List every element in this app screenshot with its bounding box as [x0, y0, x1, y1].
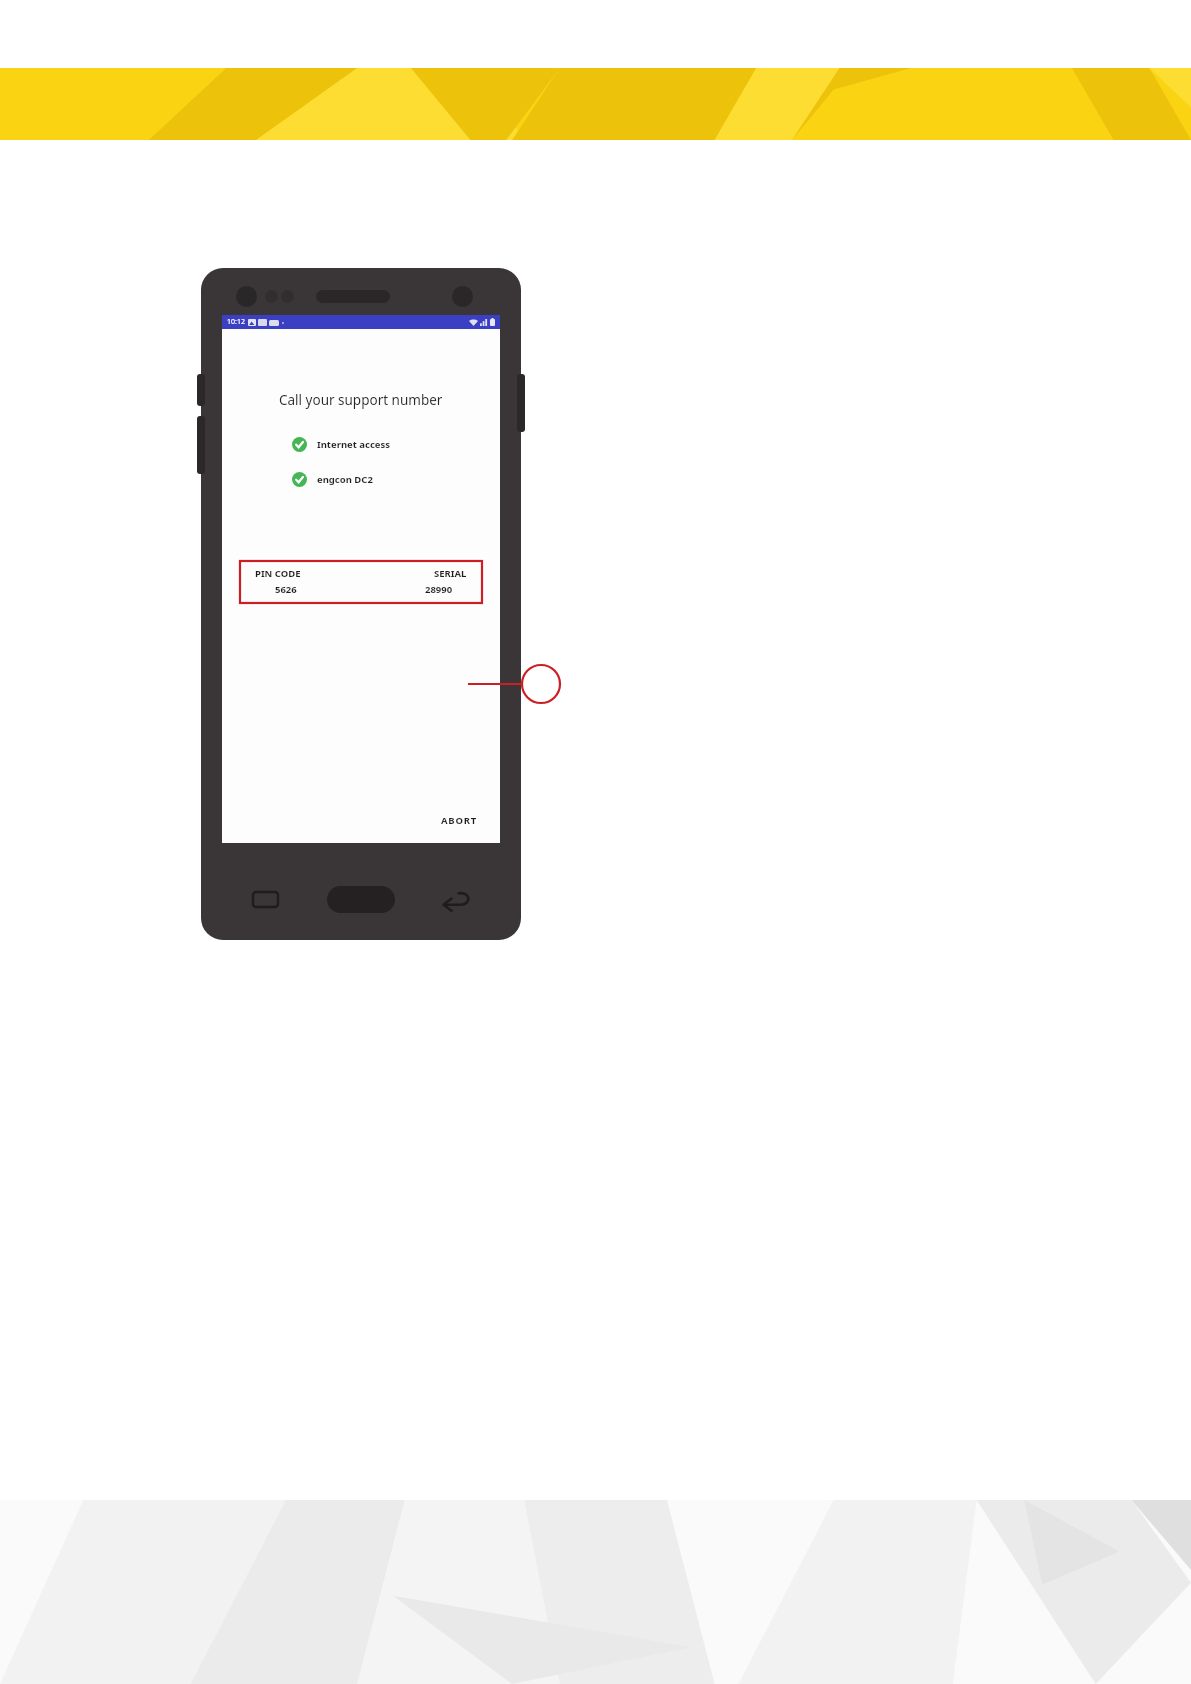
staticText: 28990 — [425, 583, 453, 596]
button[interactable]: engcon DC2 — [292, 472, 500, 487]
button[interactable]: PIN CODE — [240, 561, 482, 603]
button[interactable]: Back — [440, 888, 472, 912]
button[interactable]: Home — [327, 886, 395, 913]
staticText: Internet access — [317, 438, 391, 451]
staticText: PIN CODE — [255, 567, 301, 580]
staticText: 5626 — [275, 583, 297, 596]
button[interactable]: Recents — [251, 889, 282, 912]
staticText: ABORT — [441, 814, 478, 827]
staticText: engcon DC2 — [317, 473, 373, 486]
button[interactable]: ABORT — [435, 810, 484, 831]
button[interactable]: Internet access — [292, 437, 500, 452]
staticText: 10:12 — [227, 317, 245, 327]
staticText: SERIAL — [434, 567, 467, 580]
staticText: Call your support number — [279, 391, 443, 409]
